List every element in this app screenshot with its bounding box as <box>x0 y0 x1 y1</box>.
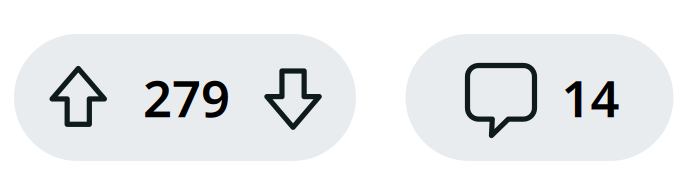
button[interactable]: Downvote <box>242 34 356 161</box>
staticText: 279 <box>143 64 230 131</box>
staticText: 14 <box>561 64 619 131</box>
button[interactable]: Upvote <box>14 34 128 161</box>
button[interactable]: 14 <box>405 34 673 161</box>
